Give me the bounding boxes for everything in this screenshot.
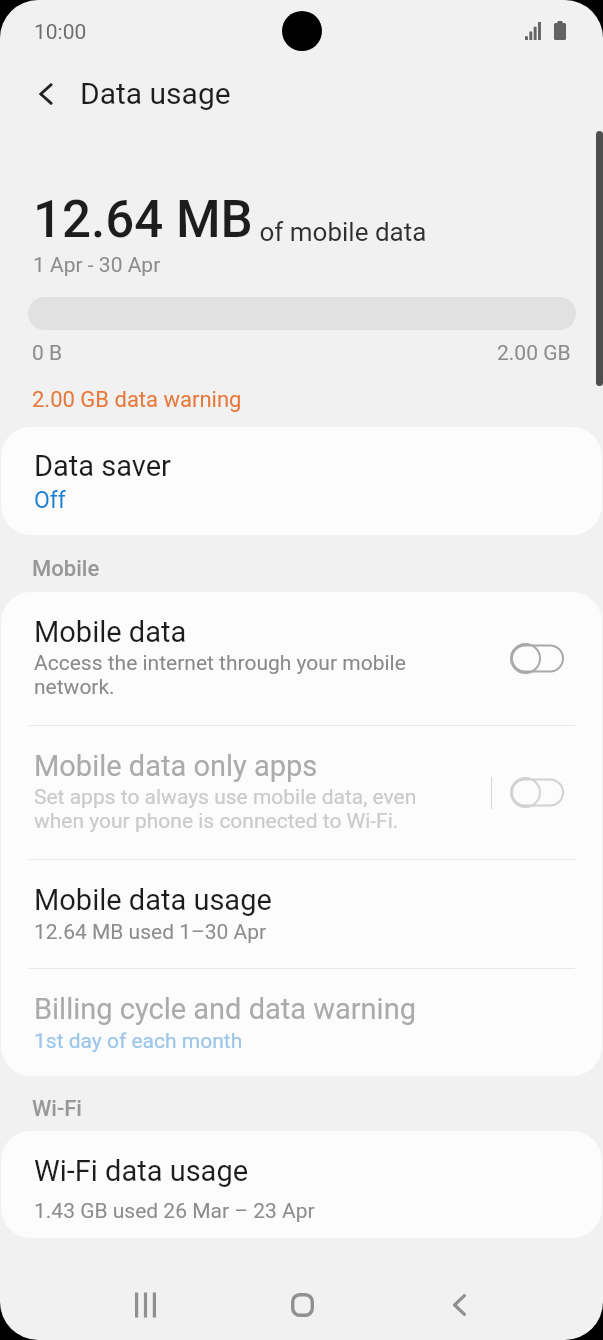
staticText: 1.43 GB used 26 Mar – 23 Apr: [34, 1199, 315, 1224]
staticText: 12.64 MB used 1–30 Apr: [34, 920, 267, 945]
button[interactable]: Mobile data usage: [1, 860, 602, 968]
button[interactable]: Billing cycle and data warning: [1, 969, 602, 1076]
button[interactable]: Toggle: [510, 643, 564, 674]
staticText: 12.64 MB: [33, 190, 253, 250]
staticText: Wi-Fi data usage: [34, 1154, 249, 1188]
button[interactable]: Toggle: [510, 777, 564, 808]
staticText: Billing cycle and data warning: [34, 992, 416, 1026]
button[interactable]: Mobile data: [1, 592, 602, 725]
staticText: Mobile: [32, 556, 100, 582]
staticText: Mobile data: [34, 615, 187, 649]
button[interactable]: Home: [262, 1270, 342, 1340]
staticText: Wi-Fi: [32, 1096, 82, 1122]
staticText: 2.00 GB: [497, 341, 571, 366]
staticText: Mobile data usage: [34, 883, 272, 917]
staticText: Data usage: [80, 76, 231, 111]
staticText: of mobile data: [253, 217, 427, 247]
button[interactable]: Back: [419, 1270, 499, 1340]
button[interactable]: Back: [22, 70, 70, 118]
staticText: Data saver: [34, 449, 171, 483]
staticText: Access the internet through your mobile …: [34, 651, 406, 699]
staticText: Off: [34, 487, 66, 514]
staticText: 1st day of each month: [34, 1029, 243, 1054]
staticText: 0 B: [32, 341, 63, 366]
staticText: 10:00: [34, 20, 87, 45]
staticText: 2.00 GB data warning: [32, 387, 242, 413]
staticText: Set apps to always use mobile data, even…: [34, 785, 417, 833]
button[interactable]: Wi-Fi data usage: [1, 1131, 602, 1238]
button[interactable]: Recents: [105, 1270, 185, 1340]
button[interactable]: Data saver: [1, 427, 602, 535]
button[interactable]: Mobile data only apps: [1, 726, 602, 859]
staticText: 1 Apr - 30 Apr: [33, 253, 161, 278]
staticText: Mobile data only apps: [34, 749, 318, 783]
